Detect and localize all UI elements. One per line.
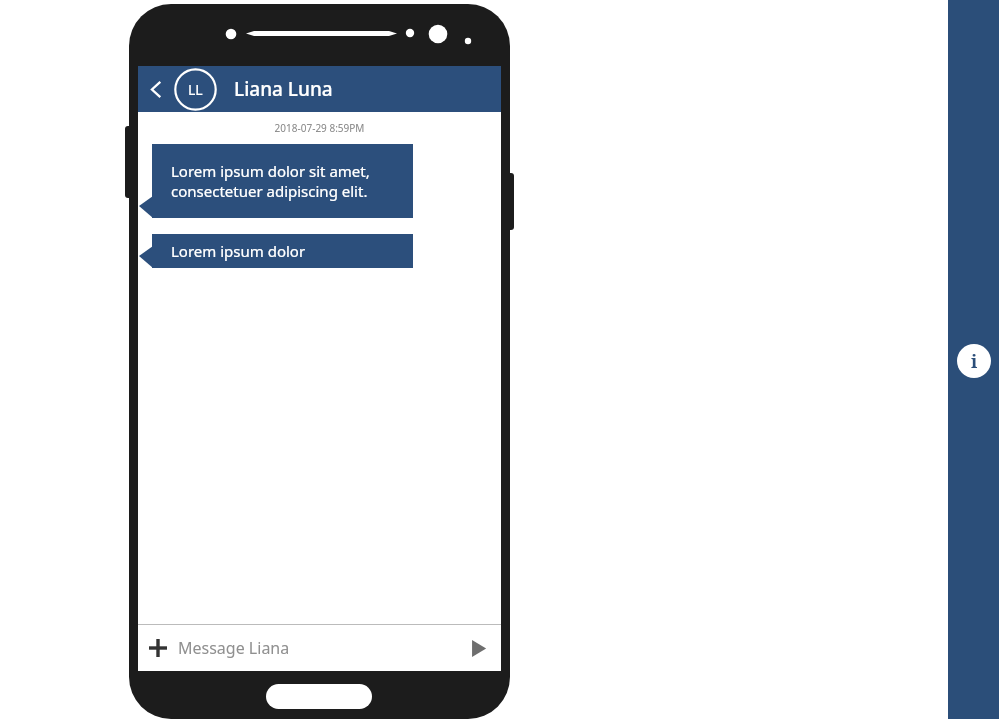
button[interactable]: Lorem ipsum dolor [152, 234, 413, 268]
staticText: consectetuer adipiscing elit. [171, 181, 368, 201]
staticText: LL [188, 80, 203, 99]
staticText: i [971, 349, 978, 374]
staticText: Lorem ipsum dolor [171, 241, 306, 261]
button[interactable]: Information [957, 344, 991, 378]
button[interactable]: Back [138, 66, 174, 112]
button[interactable]: Send [455, 625, 501, 671]
staticText: Lorem ipsum dolor sit amet, [171, 161, 370, 181]
button[interactable]: Lorem ipsum dolor sit amet, [152, 144, 413, 218]
button[interactable]: LL [174, 68, 217, 111]
staticText: Message Liana [178, 637, 290, 659]
staticText: 2018-07-29 8:59PM [138, 121, 501, 135]
staticText: Liana Luna [234, 76, 333, 102]
button[interactable]: Message Liana [178, 625, 455, 671]
button[interactable]: Add attachment [138, 625, 178, 671]
